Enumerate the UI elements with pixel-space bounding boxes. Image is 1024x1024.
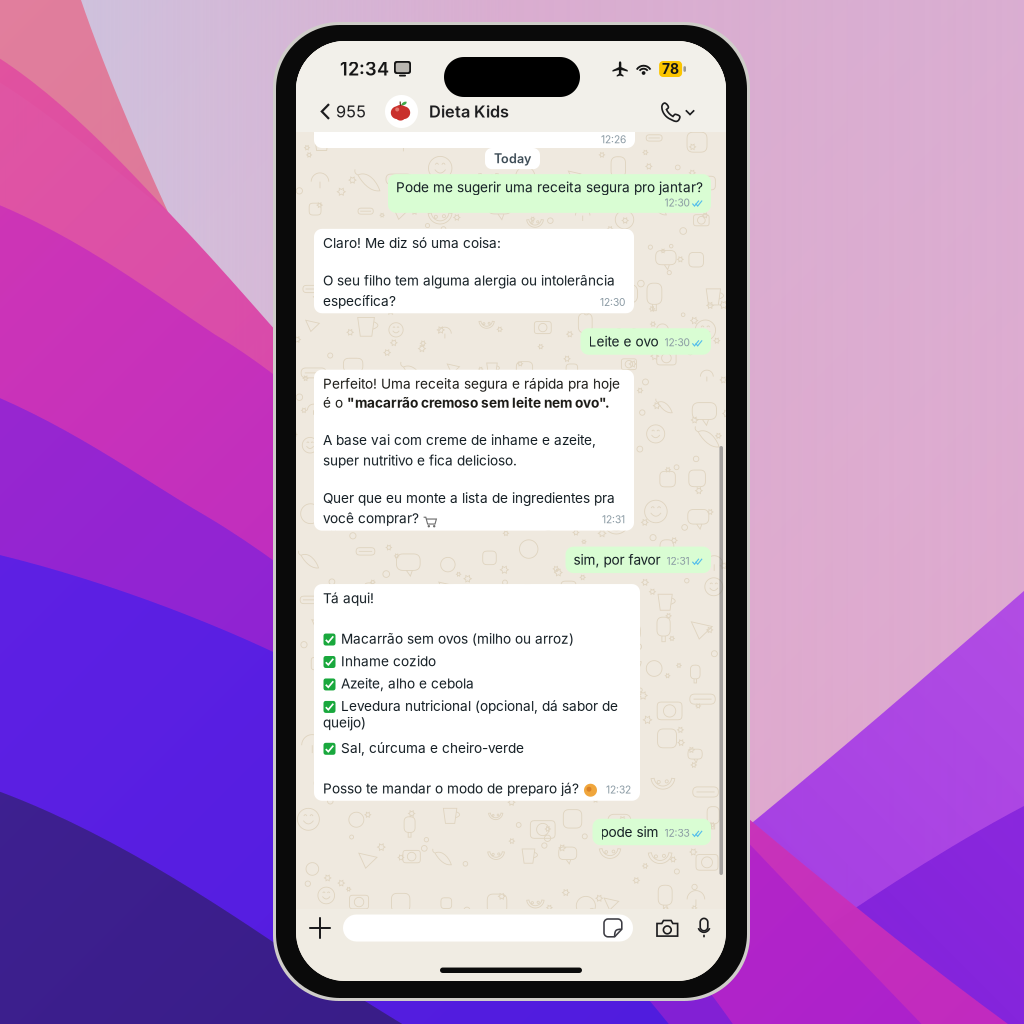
staticText: pode sim xyxy=(600,824,658,840)
staticText: Azeite, alho e cebola xyxy=(341,675,474,692)
staticText: super nutritivo e fica delicioso. xyxy=(323,452,517,469)
button[interactable]: Attach xyxy=(297,906,343,950)
staticText: específica? xyxy=(323,293,396,309)
staticText: Levedura nutricional (opcional, dá sabor… xyxy=(341,698,618,714)
staticText: Leite e ovo xyxy=(588,333,658,350)
staticText: O seu filho tem alguma alergia ou intole… xyxy=(323,272,615,289)
staticText: Quer que eu monte a lista de ingrediente… xyxy=(323,490,615,506)
staticText: 955 xyxy=(336,102,366,121)
staticText: Claro! Me diz só uma coisa: xyxy=(323,235,501,251)
button[interactable]: Voice message xyxy=(688,906,720,950)
staticText: Inhame cozido xyxy=(341,653,436,669)
staticText: você comprar? xyxy=(323,510,419,527)
staticText: 78 xyxy=(662,61,679,77)
staticText: A base vai com creme de inhame e azeite, xyxy=(323,432,596,448)
button[interactable]: Camera xyxy=(647,906,688,950)
button[interactable]: Dieta Kids xyxy=(385,91,509,131)
button[interactable]: 955 xyxy=(296,91,385,131)
staticText: Perfeito! Uma receita segura e rápida pr… xyxy=(323,376,620,411)
staticText: 12:30 xyxy=(664,197,689,209)
staticText: queijo) xyxy=(323,714,366,731)
staticText: 12:34 xyxy=(340,58,389,80)
staticText: 12:31 xyxy=(666,555,689,567)
staticText: Pode me sugerir uma receita segura pro j… xyxy=(396,179,703,196)
staticText: 12:30 xyxy=(664,336,689,349)
staticText: Dieta Kids xyxy=(429,102,509,121)
staticText: 12:26 xyxy=(601,133,626,146)
staticText: Tá aqui! xyxy=(323,590,374,607)
button[interactable]: Call xyxy=(660,91,726,131)
staticText: 12:30 xyxy=(600,296,625,308)
staticText: Sal, cúrcuma e cheiro-verde xyxy=(341,740,524,756)
staticText: Macarrão sem ovos (milho ou arroz) xyxy=(341,630,574,647)
staticText: 12:32 xyxy=(606,784,631,796)
staticText: Today xyxy=(494,151,531,166)
staticText: Posso te mandar o modo de preparo já? xyxy=(323,780,579,797)
button[interactable]: Message xyxy=(343,914,633,941)
staticText: 12:33 xyxy=(664,827,689,839)
staticText: sim, por favor xyxy=(573,552,660,568)
staticText: 12:31 xyxy=(602,513,625,526)
